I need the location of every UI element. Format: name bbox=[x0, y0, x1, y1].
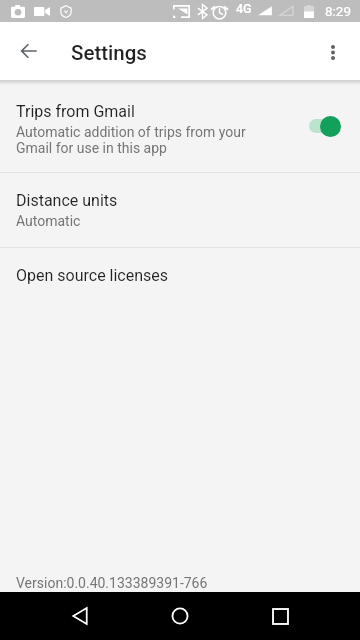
staticText: Settings bbox=[71, 41, 147, 65]
staticText: Automatic addition of trips from your Gm… bbox=[16, 124, 246, 156]
button[interactable]: Back bbox=[56, 592, 104, 640]
button[interactable]: Recent apps bbox=[256, 592, 304, 640]
staticText: Trips from Gmail bbox=[16, 102, 135, 121]
staticText: 8:29 bbox=[325, 3, 352, 19]
button[interactable]: More options bbox=[309, 27, 357, 75]
button[interactable]: Navigate up bbox=[5, 27, 53, 75]
button[interactable]: Trips from Gmail bbox=[0, 80, 360, 172]
staticText: Open source licenses bbox=[16, 266, 169, 285]
staticText: Automatic bbox=[16, 213, 81, 229]
staticText: 4G bbox=[236, 1, 252, 16]
staticText: Version:0.0.40.133389391-766 bbox=[16, 575, 208, 591]
button[interactable]: Home bbox=[156, 592, 204, 640]
button[interactable]: Open source licenses bbox=[0, 248, 360, 303]
staticText: Distance units bbox=[16, 191, 118, 210]
button[interactable]: Distance units bbox=[0, 173, 360, 247]
